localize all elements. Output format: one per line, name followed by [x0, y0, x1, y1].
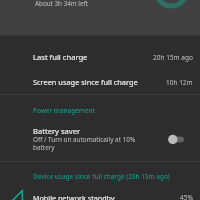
- staticText: Mobile network standby: [33, 193, 115, 200]
- staticText: Device usage since full charge (20h 15m …: [33, 172, 170, 181]
- button[interactable]: Screen usage since full charge: [0, 70, 200, 94]
- staticText: Power management: [33, 106, 96, 115]
- button[interactable]: Battery saver: [0, 120, 200, 157]
- staticText: About 3h 34m left: [35, 0, 88, 8]
- button[interactable]: Last full charge: [0, 45, 200, 69]
- staticText: Battery saver: [33, 126, 81, 136]
- staticText: Screen usage since full charge: [33, 77, 138, 87]
- staticText: 20h 15m ago: [153, 53, 193, 62]
- staticText: 45%: [180, 193, 193, 200]
- button[interactable]: Mobile network standby: [0, 186, 200, 200]
- staticText: 10h 12m: [166, 78, 193, 87]
- button[interactable]: Battery saver toggle: [168, 130, 192, 148]
- staticText: Last full charge: [33, 52, 88, 62]
- staticText: Off / Turn on automatically at 10% batte…: [33, 135, 136, 152]
